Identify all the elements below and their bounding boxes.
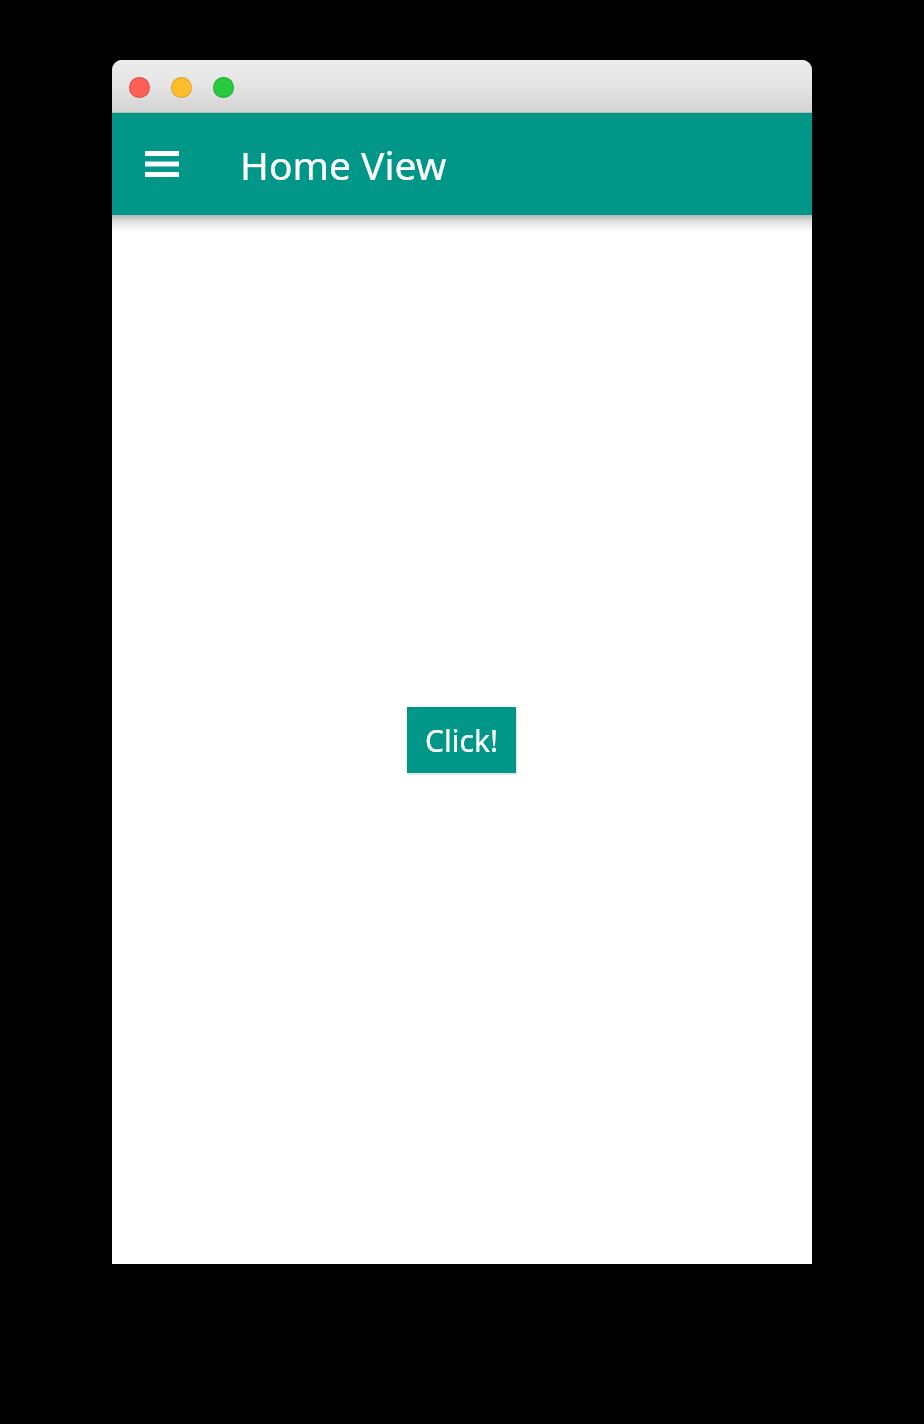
button[interactable]: Close	[128, 76, 150, 98]
button[interactable]: Open navigation menu	[133, 135, 191, 193]
staticText: Click!	[425, 720, 498, 761]
staticText: Home View	[240, 138, 447, 191]
button[interactable]: Minimize	[170, 76, 192, 98]
button[interactable]: Click!	[407, 707, 516, 773]
button[interactable]: Maximize	[212, 76, 234, 98]
